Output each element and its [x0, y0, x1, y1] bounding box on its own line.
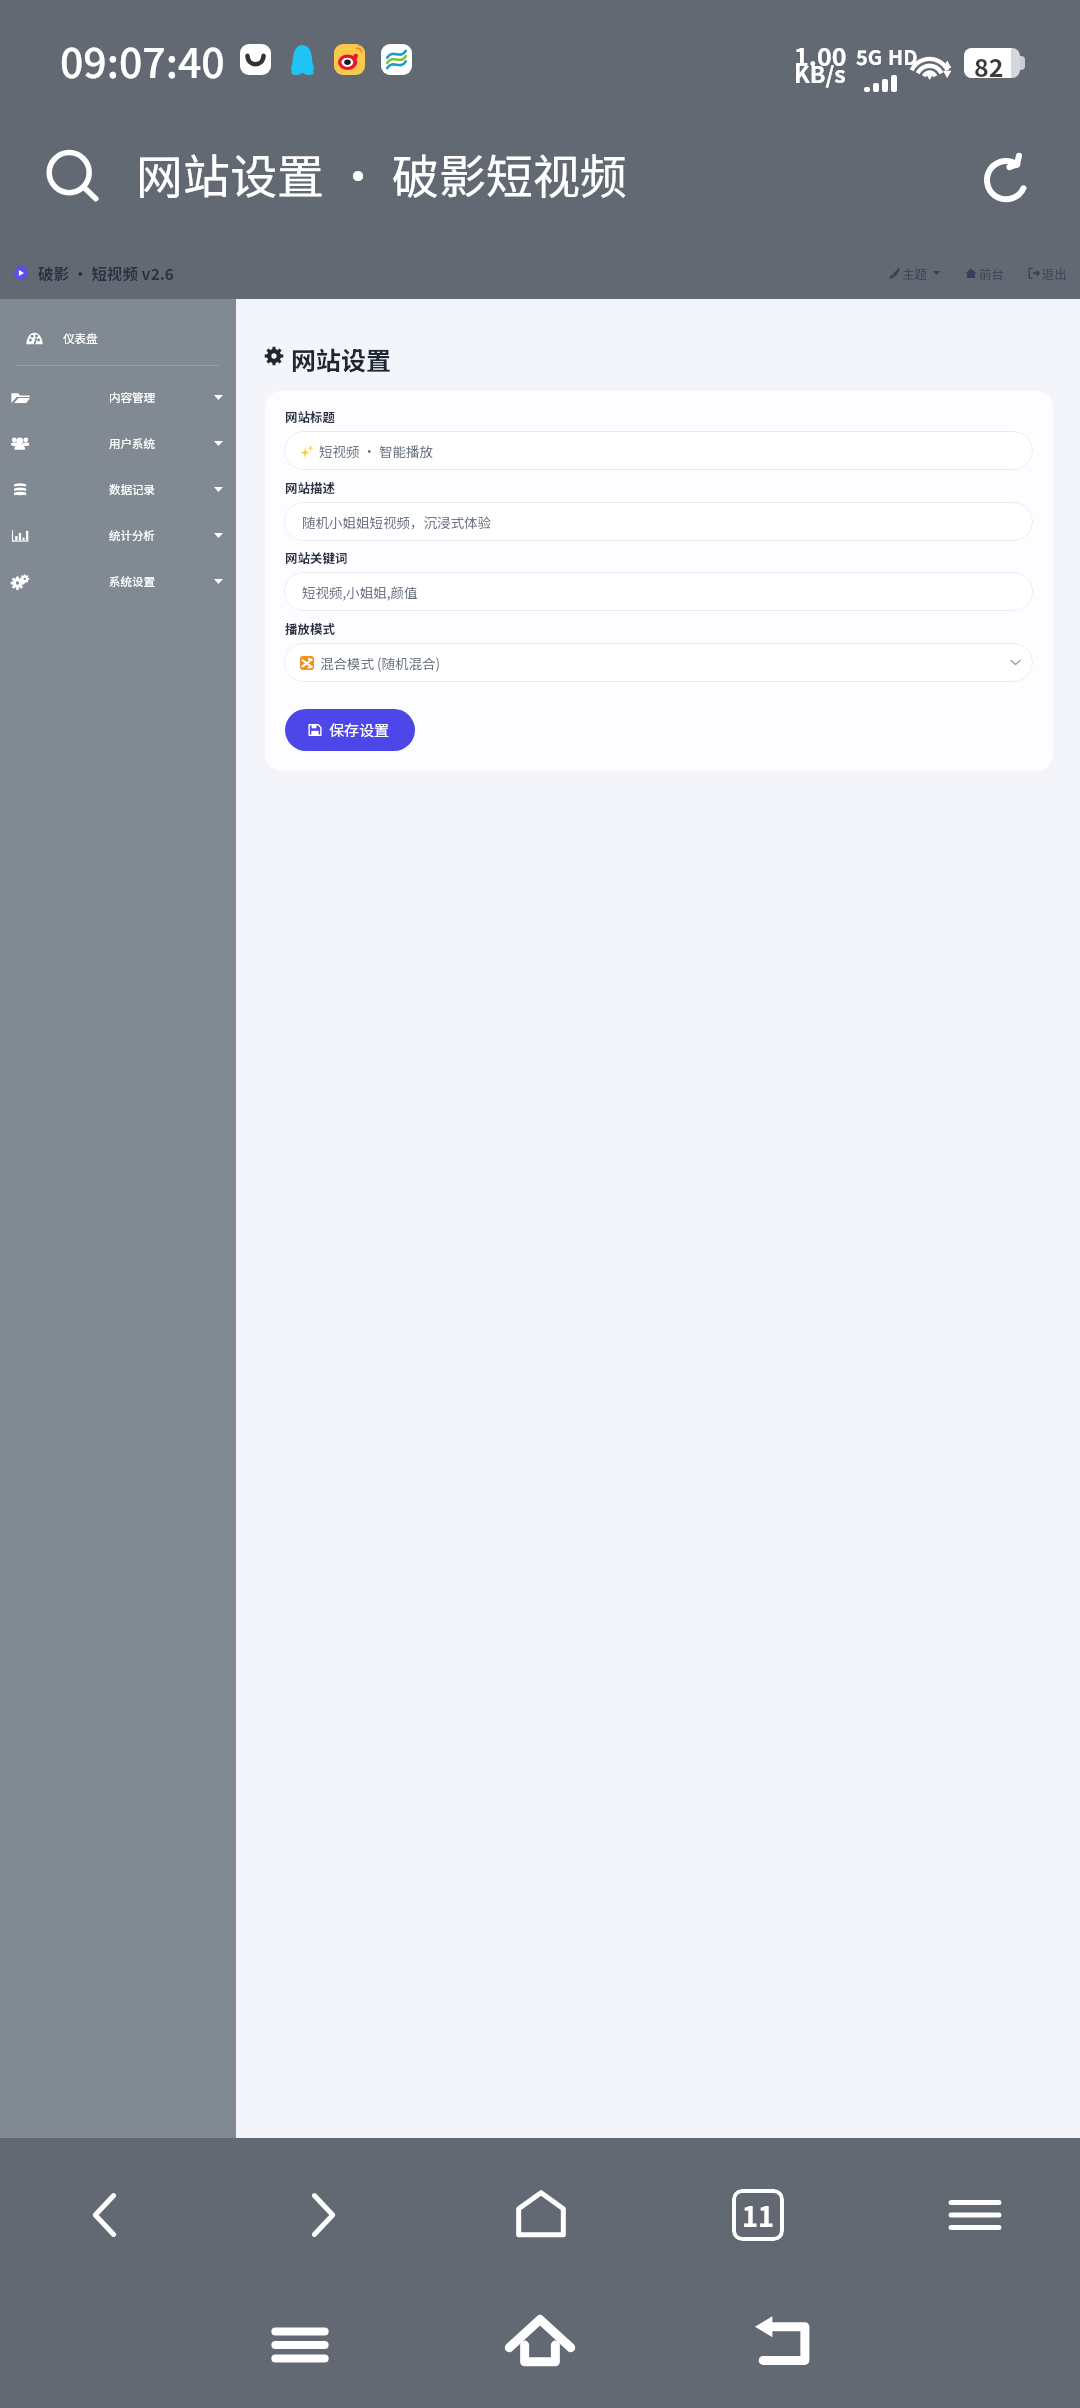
button[interactable]: 短视频,小姐姐,颜值: [284, 572, 1033, 611]
button[interactable]: 系统设置: [0, 558, 236, 604]
button[interactable]: 短视频 · 智能播放: [284, 431, 1033, 470]
staticText: 退出: [1042, 264, 1068, 282]
staticText: 网站设置 · 破影短视频: [136, 139, 628, 207]
staticText: 网站标题: [285, 407, 336, 425]
staticText: 系统设置: [109, 573, 155, 590]
staticText: 随机小姐姐短视频，沉浸式体验: [302, 512, 491, 532]
staticText: KB/s: [794, 56, 846, 89]
staticText: 09:07:40: [60, 30, 225, 89]
staticText: 混合模式 (随机混合): [320, 653, 441, 673]
button[interactable]: 混合模式 (随机混合): [284, 643, 1033, 682]
button[interactable]: 数据记录: [0, 466, 236, 512]
button[interactable]: Menu: [943, 2183, 1007, 2247]
staticText: 仪表盘: [63, 330, 98, 347]
staticText: 数据记录: [109, 481, 155, 498]
button[interactable]: 随机小姐姐短视频，沉浸式体验: [284, 502, 1033, 541]
button[interactable]: Home: [509, 2183, 573, 2247]
button[interactable]: 保存设置: [285, 709, 415, 751]
button[interactable]: Home: [508, 2308, 572, 2372]
button[interactable]: 用户系统: [0, 420, 236, 466]
staticText: 短视频,小姐姐,颜值: [302, 582, 418, 602]
staticText: 保存设置: [329, 719, 390, 741]
button[interactable]: Forward: [291, 2183, 355, 2247]
button[interactable]: 前台: [965, 259, 1005, 287]
staticText: 网站设置: [291, 341, 392, 377]
staticText: HD: [888, 42, 918, 71]
button[interactable]: 退出: [1028, 259, 1068, 287]
button[interactable]: Back: [73, 2183, 137, 2247]
button[interactable]: 内容管理: [0, 374, 236, 420]
staticText: 1.00: [794, 37, 847, 73]
button[interactable]: 统计分析: [0, 512, 236, 558]
staticText: 统计分析: [109, 527, 155, 544]
button[interactable]: Back: [752, 2311, 816, 2375]
staticText: 网站关键词: [285, 548, 348, 566]
staticText: 82: [974, 48, 1004, 78]
button[interactable]: Search: [40, 144, 110, 214]
staticText: 破影 · 短视频 v2.6: [38, 262, 174, 284]
button[interactable]: Recents: [268, 2313, 332, 2377]
staticText: 5G: [856, 42, 883, 71]
staticText: 播放模式: [285, 619, 336, 637]
button[interactable]: Tabs: [727, 2184, 789, 2246]
staticText: 11: [742, 2196, 774, 2235]
staticText: 前台: [979, 264, 1005, 282]
button[interactable]: Reload: [974, 144, 1044, 214]
staticText: 用户系统: [109, 435, 155, 452]
staticText: 网站描述: [285, 478, 336, 496]
staticText: 内容管理: [109, 389, 155, 406]
button[interactable]: 主题: [888, 259, 940, 287]
staticText: 短视频 · 智能播放: [319, 441, 434, 461]
staticText: 主题: [902, 264, 928, 282]
button[interactable]: 仪表盘: [0, 318, 236, 358]
